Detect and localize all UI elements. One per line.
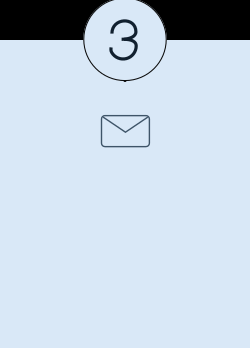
button[interactable]: 3 unread <box>83 0 167 81</box>
button[interactable]: Mail <box>101 116 149 147</box>
